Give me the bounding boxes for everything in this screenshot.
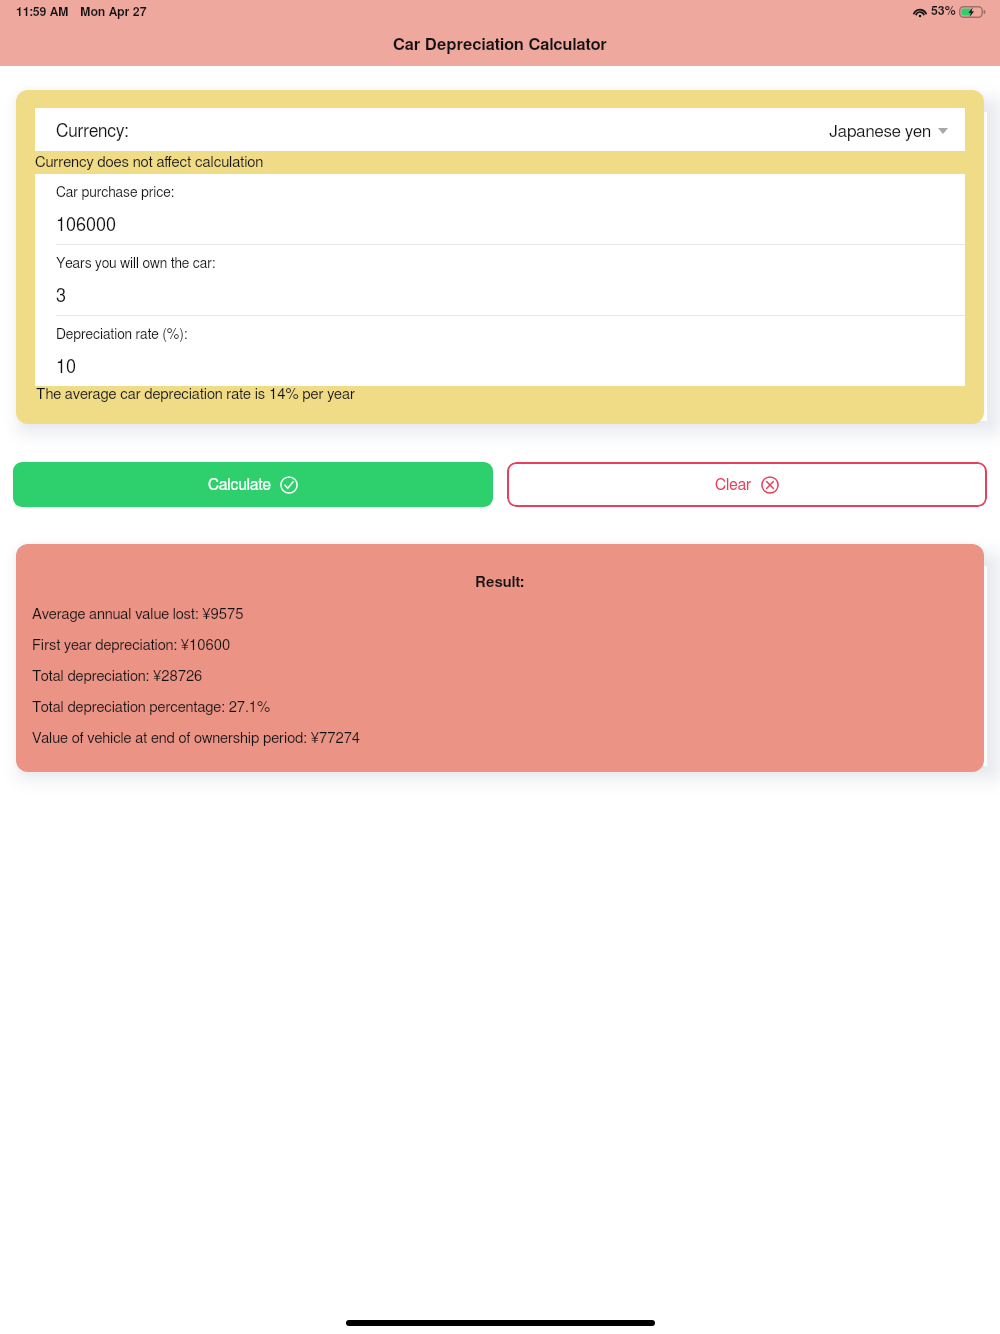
staticText: The average car depreciation rate is 14%… (36, 387, 355, 402)
button[interactable]: Calculate (13, 462, 493, 507)
staticText: 106000 (56, 217, 117, 235)
button[interactable]: Select currency (35, 108, 965, 151)
button[interactable]: Clear (507, 462, 987, 507)
button[interactable]: Car purchase price: (35, 174, 965, 245)
staticText: Mon Apr 27 (80, 6, 147, 18)
staticText: Depreciation rate (%): (56, 328, 188, 342)
staticText: Value of vehicle at end of ownership per… (32, 731, 361, 746)
staticText: Japanese yen (829, 123, 932, 140)
staticText: Currency does not affect calculation (35, 155, 264, 170)
staticText: Average annual value lost: ¥9575 (32, 607, 244, 622)
staticText: 53% (931, 5, 956, 17)
staticText: 3 (56, 288, 67, 306)
staticText: Total depreciation percentage: 27.1% (32, 700, 271, 715)
staticText: Years you will own the car: (56, 257, 216, 271)
staticText: Car purchase price: (56, 186, 175, 200)
staticText: 11:59 AM (16, 6, 69, 18)
button[interactable]: Depreciation rate (%): (35, 316, 965, 386)
staticText: Currency: (56, 123, 129, 141)
staticText: 10 (56, 359, 77, 377)
staticText: First year depreciation: ¥10600 (32, 638, 231, 653)
staticText: Car Depreciation Calculator (393, 37, 607, 53)
staticText: Clear (715, 477, 752, 493)
staticText: Result: (475, 575, 525, 590)
staticText: Calculate (208, 477, 271, 493)
button[interactable]: Years you will own the car: (35, 245, 965, 316)
staticText: Total depreciation: ¥28726 (32, 669, 203, 684)
